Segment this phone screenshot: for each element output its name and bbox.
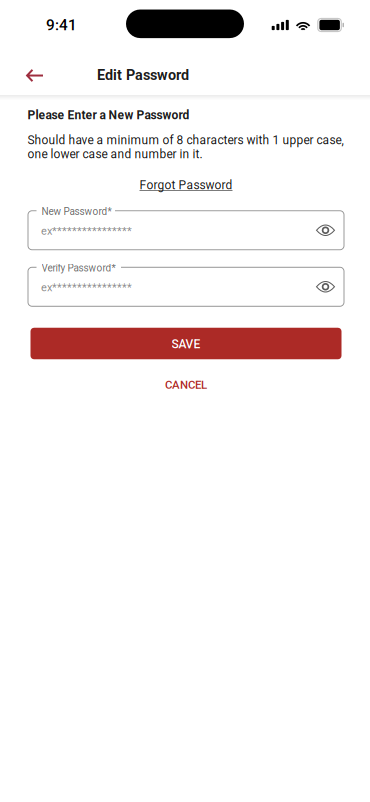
staticText: Edit Password bbox=[97, 67, 189, 83]
staticText: Please Enter a New Password bbox=[27, 108, 189, 122]
staticText: ex**************** bbox=[41, 225, 132, 237]
button[interactable]: Back bbox=[0, 55, 55, 90]
button[interactable]: Show password bbox=[312, 274, 338, 300]
staticText: Verify Password* bbox=[41, 262, 115, 274]
button[interactable]: SAVE bbox=[30, 328, 341, 359]
button[interactable]: Forgot Password bbox=[27, 175, 344, 195]
staticText: Forgot Password bbox=[139, 178, 232, 192]
staticText: SAVE bbox=[171, 337, 200, 351]
staticText: New Password* bbox=[41, 206, 111, 217]
button[interactable]: CANCEL bbox=[27, 375, 344, 395]
staticText: CANCEL bbox=[165, 378, 207, 392]
staticText: 9:41 bbox=[46, 16, 77, 34]
button[interactable]: Show password bbox=[312, 217, 338, 243]
staticText: ex**************** bbox=[41, 281, 132, 294]
staticText: Should have a minimum of 8 characters wi… bbox=[27, 133, 343, 161]
